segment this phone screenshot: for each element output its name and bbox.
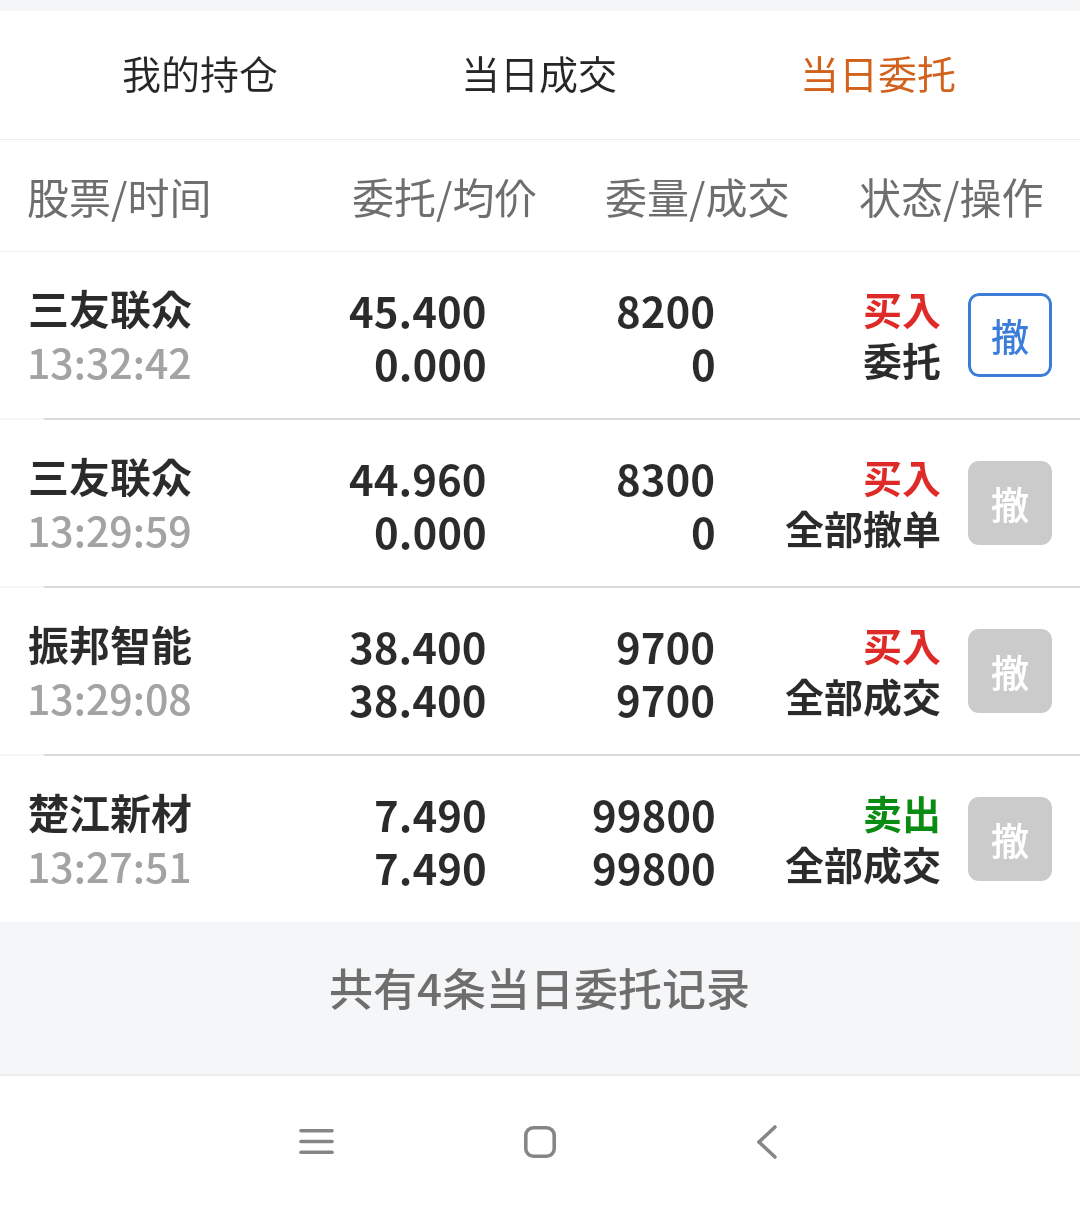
staticText: 0.000 — [374, 500, 487, 561]
button[interactable]: 我的持仓 — [30, 11, 370, 139]
staticText: 全部成交 — [785, 667, 942, 723]
staticText: 委托/均价 — [352, 165, 537, 226]
staticText: 楚江新材 — [28, 781, 192, 840]
button[interactable]: 振邦智能 — [0, 588, 1080, 754]
staticText: 45.400 — [349, 279, 487, 340]
staticText: 8300 — [616, 447, 716, 508]
staticText: 9700 — [616, 668, 716, 729]
button[interactable]: Home — [495, 1097, 585, 1187]
staticText: 当日委托 — [800, 44, 957, 100]
staticText: 撤 — [991, 643, 1030, 698]
button[interactable]: 当日委托 — [709, 11, 1048, 139]
staticText: 13:32:42 — [27, 331, 192, 390]
staticText: 0 — [691, 332, 716, 393]
staticText: 共有4条当日委托记录 — [329, 955, 751, 1019]
staticText: 7.490 — [374, 783, 487, 844]
button[interactable]: 三友联众 — [0, 420, 1080, 586]
staticText: 0 — [691, 500, 716, 561]
staticText: 我的持仓 — [122, 44, 279, 100]
staticText: 9700 — [616, 615, 716, 676]
staticText: 7.490 — [374, 836, 487, 897]
staticText: 买入 — [863, 448, 942, 504]
staticText: 全部成交 — [785, 835, 942, 891]
button[interactable]: 三友联众 — [0, 252, 1080, 418]
staticText: 委托 — [863, 331, 942, 387]
staticText: 卖出 — [863, 784, 942, 840]
staticText: 股票/时间 — [27, 165, 212, 226]
button[interactable]: 楚江新材 — [0, 756, 1080, 922]
staticText: 状态/操作 — [859, 165, 1044, 226]
staticText: 撤 — [991, 307, 1030, 362]
staticText: 0.000 — [374, 332, 487, 393]
button[interactable]: 撤单 — [968, 293, 1052, 377]
staticText: 委量/成交 — [605, 165, 790, 226]
button[interactable]: Back — [722, 1097, 812, 1187]
staticText: 8200 — [616, 279, 716, 340]
button[interactable]: 撤单 (不可用) — [968, 461, 1052, 545]
staticText: 38.400 — [349, 615, 487, 676]
staticText: 13:29:08 — [27, 667, 192, 726]
button[interactable]: 当日成交 — [370, 11, 709, 139]
staticText: 13:29:59 — [27, 499, 192, 558]
staticText: 44.960 — [349, 447, 487, 508]
staticText: 99800 — [592, 836, 716, 897]
button[interactable]: 撤单 (不可用) — [968, 797, 1052, 881]
staticText: 全部撤单 — [785, 499, 942, 555]
staticText: 撤 — [991, 811, 1030, 866]
staticText: 当日成交 — [461, 44, 618, 100]
staticText: 买入 — [863, 616, 942, 672]
staticText: 13:27:51 — [27, 835, 192, 894]
button[interactable]: Recent apps — [271, 1096, 361, 1186]
staticText: 三友联众 — [28, 445, 192, 504]
staticText: 三友联众 — [28, 277, 192, 336]
staticText: 撤 — [991, 475, 1030, 530]
staticText: 38.400 — [349, 668, 487, 729]
staticText: 振邦智能 — [28, 613, 192, 672]
button[interactable]: 撤单 (不可用) — [968, 629, 1052, 713]
staticText: 99800 — [592, 783, 716, 844]
staticText: 买入 — [863, 280, 942, 336]
